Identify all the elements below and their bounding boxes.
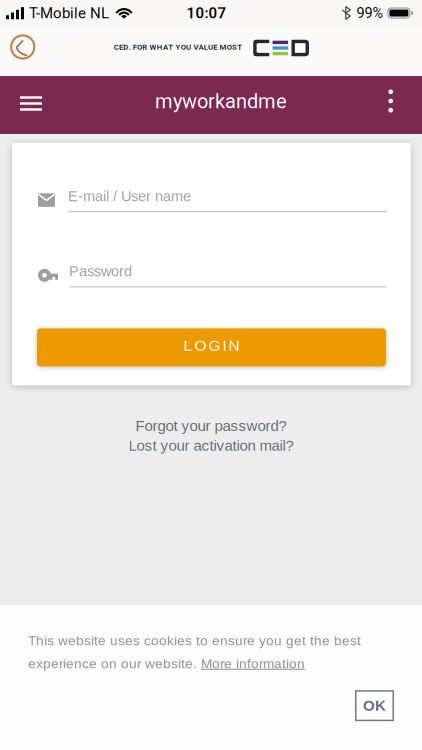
- button[interactable]: More information: [201, 656, 305, 671]
- button[interactable]: [388, 75, 422, 126]
- staticText: OK: [363, 697, 386, 714]
- button[interactable]: LOGIN: [37, 328, 386, 366]
- button[interactable]: Forgot your password?: [135, 417, 286, 434]
- staticText: This website uses cookies to ensure you …: [28, 633, 361, 648]
- staticText: Forgot your password?: [135, 417, 286, 434]
- staticText: 10:07: [186, 4, 226, 22]
- staticText: T-Mobile NL: [29, 4, 109, 22]
- staticText: LOGIN: [183, 337, 239, 354]
- staticText: experience on our website.: [28, 656, 197, 671]
- staticText: Password: [69, 263, 132, 279]
- staticText: More information: [201, 656, 305, 671]
- button[interactable]: [9, 33, 36, 61]
- staticText: Lost your activation mail?: [128, 437, 293, 454]
- button[interactable]: [0, 78, 42, 129]
- staticText: E-mail / User name: [68, 188, 191, 204]
- staticText: 99%: [356, 4, 383, 21]
- staticText: CED. FOR WHAT YOU VALUE MOST: [114, 42, 242, 51]
- button[interactable]: OK: [355, 690, 394, 721]
- staticText: myworkandme: [155, 90, 287, 113]
- button[interactable]: Lost your activation mail?: [128, 437, 293, 454]
